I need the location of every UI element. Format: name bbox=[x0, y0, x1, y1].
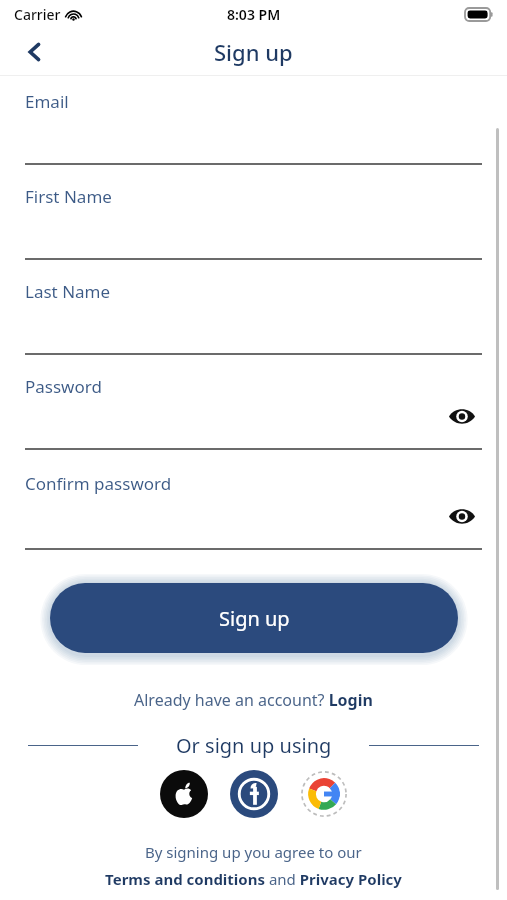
staticText: By signing up you agree to our bbox=[145, 842, 362, 862]
button[interactable]: Sign up with Google bbox=[300, 770, 348, 818]
button[interactable]: Sign up with Apple bbox=[160, 770, 208, 818]
button[interactable]: Terms and conditions and Privacy Policy bbox=[105, 869, 402, 889]
staticText: Email bbox=[25, 90, 69, 113]
button[interactable]: Confirm password bbox=[25, 472, 482, 548]
staticText: First Name bbox=[25, 185, 112, 208]
staticText: Sign up bbox=[219, 605, 290, 632]
staticText: 8:03 PM bbox=[227, 5, 281, 24]
button[interactable]: Password bbox=[25, 375, 482, 448]
staticText: Sign up bbox=[214, 37, 293, 67]
staticText: Carrier bbox=[14, 5, 61, 24]
button[interactable]: Already have an account? Login bbox=[0, 686, 507, 714]
staticText: Terms and conditions and Privacy Policy bbox=[105, 869, 402, 889]
staticText: Password bbox=[25, 375, 102, 398]
button[interactable]: Email bbox=[25, 90, 482, 163]
staticText: Last Name bbox=[25, 280, 111, 303]
staticText: Already have an account? Login bbox=[134, 689, 373, 711]
button[interactable]: Sign up bbox=[50, 583, 458, 653]
button[interactable]: Last Name bbox=[25, 280, 482, 353]
button[interactable]: Show password bbox=[442, 496, 482, 536]
button[interactable]: Back bbox=[14, 31, 56, 73]
staticText: Or sign up using bbox=[176, 732, 332, 759]
button[interactable]: First Name bbox=[25, 185, 482, 258]
staticText: Confirm password bbox=[25, 472, 172, 495]
button[interactable]: Show password bbox=[442, 396, 482, 436]
button[interactable]: Sign up with Facebook bbox=[230, 770, 278, 818]
